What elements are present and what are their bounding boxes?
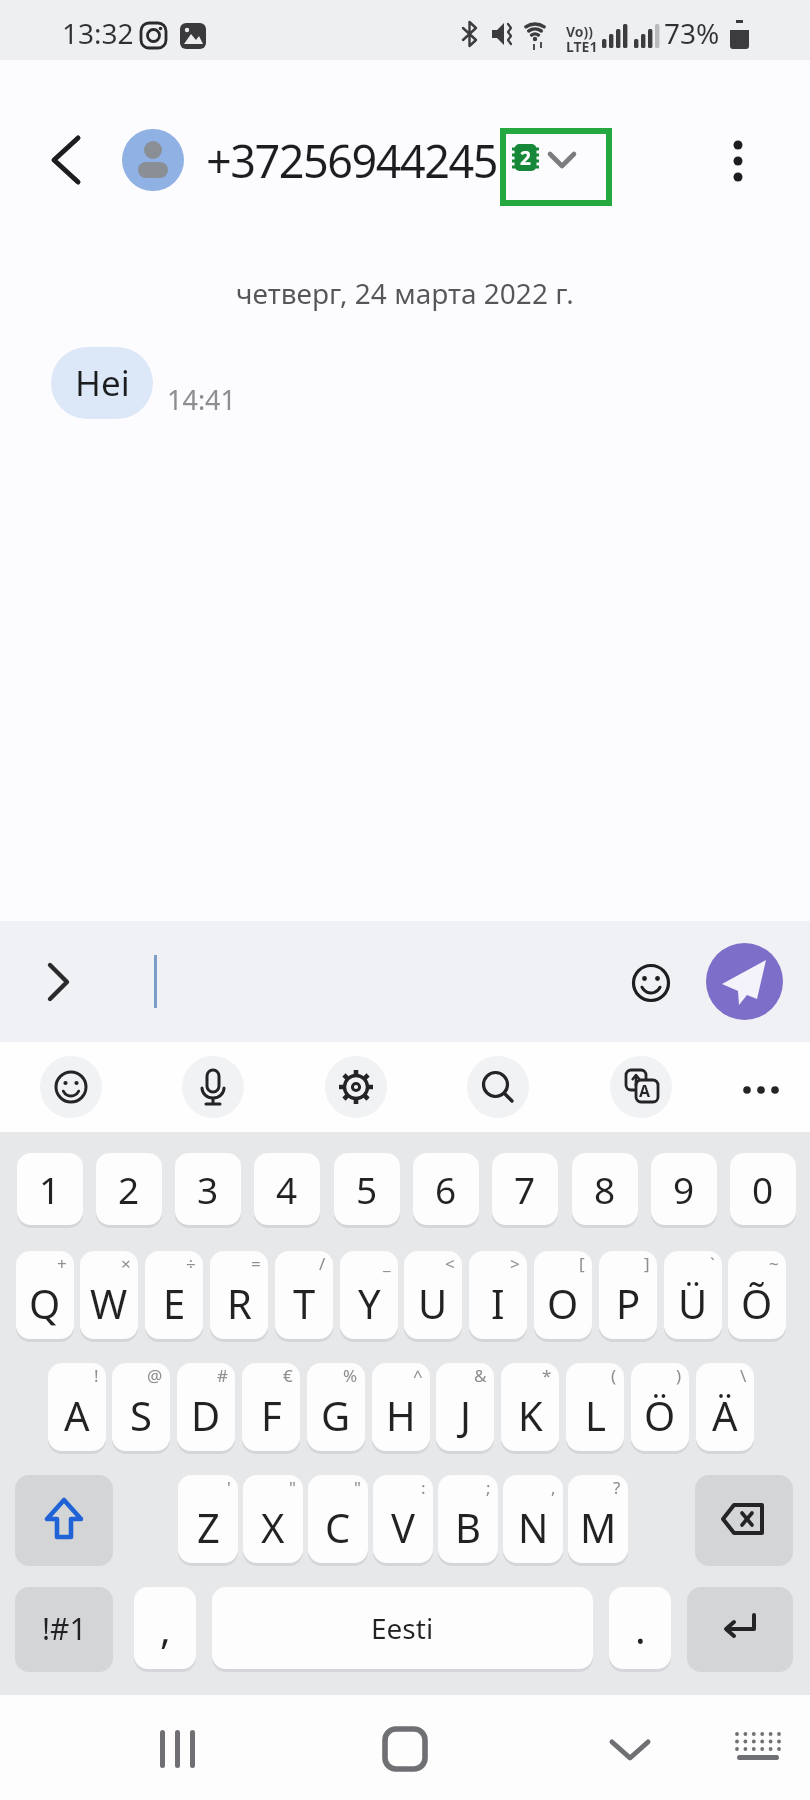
- staticText: G: [321, 1388, 351, 1442]
- button[interactable]: B: [438, 1475, 498, 1563]
- button[interactable]: 2: [96, 1153, 162, 1225]
- staticText: :: [421, 1476, 426, 1499]
- button[interactable]: G: [307, 1363, 365, 1451]
- button[interactable]: N: [503, 1475, 563, 1563]
- button[interactable]: [36, 958, 80, 1008]
- staticText: 2: [118, 1164, 140, 1214]
- button[interactable]: [182, 1056, 244, 1118]
- staticText: +37256944245: [206, 130, 497, 191]
- staticText: 2: [520, 145, 531, 171]
- button[interactable]: 7: [492, 1153, 558, 1225]
- staticText: ÷: [186, 1252, 196, 1275]
- button[interactable]: [40, 1056, 102, 1118]
- button[interactable]: 1: [17, 1153, 83, 1225]
- button[interactable]: S: [112, 1363, 170, 1451]
- staticText: @: [147, 1364, 163, 1387]
- button[interactable]: P: [599, 1251, 657, 1339]
- staticText: L: [585, 1388, 606, 1442]
- button[interactable]: Y: [340, 1251, 398, 1339]
- button[interactable]: V: [373, 1475, 433, 1563]
- button[interactable]: 3: [175, 1153, 241, 1225]
- button[interactable]: U: [404, 1251, 462, 1339]
- button[interactable]: Õ: [728, 1251, 786, 1339]
- button[interactable]: [122, 129, 184, 191]
- staticText: ): [676, 1364, 682, 1387]
- button[interactable]: T: [275, 1251, 333, 1339]
- button[interactable]: 5: [334, 1153, 400, 1225]
- staticText: C: [325, 1500, 351, 1554]
- button[interactable]: 9: [651, 1153, 717, 1225]
- button[interactable]: 6: [413, 1153, 479, 1225]
- button[interactable]: I: [469, 1251, 527, 1339]
- staticText: Ö: [644, 1388, 676, 1442]
- staticText: ,: [160, 1601, 171, 1655]
- button[interactable]: [629, 961, 673, 1005]
- button[interactable]: Eesti: [212, 1587, 593, 1669]
- button[interactable]: W: [80, 1251, 138, 1339]
- button[interactable]: F: [242, 1363, 300, 1451]
- button[interactable]: [375, 1719, 435, 1779]
- staticText: K: [518, 1388, 543, 1442]
- button[interactable]: 0: [730, 1153, 796, 1225]
- button[interactable]: Z: [178, 1475, 238, 1563]
- staticText: Õ: [741, 1276, 773, 1330]
- button[interactable]: [695, 1475, 793, 1563]
- button[interactable]: R: [210, 1251, 268, 1339]
- staticText: J: [460, 1388, 471, 1442]
- staticText: O: [547, 1276, 579, 1330]
- button[interactable]: [15, 1475, 113, 1563]
- button[interactable]: K: [501, 1363, 559, 1451]
- staticText: €: [283, 1364, 293, 1387]
- button[interactable]: Q: [16, 1251, 74, 1339]
- staticText: U: [418, 1276, 448, 1330]
- button[interactable]: D: [177, 1363, 235, 1451]
- button[interactable]: [706, 943, 783, 1020]
- button[interactable]: X: [243, 1475, 303, 1563]
- button[interactable]: A: [610, 1056, 672, 1118]
- button[interactable]: [734, 1060, 790, 1116]
- button[interactable]: ,: [134, 1587, 196, 1669]
- button[interactable]: [718, 132, 758, 188]
- staticText: Ü: [678, 1276, 708, 1330]
- button[interactable]: !#1: [15, 1587, 113, 1669]
- button[interactable]: [148, 1720, 208, 1778]
- button[interactable]: A: [48, 1363, 106, 1451]
- button[interactable]: Ü: [664, 1251, 722, 1339]
- staticText: 4: [276, 1164, 298, 1214]
- staticText: ~: [769, 1252, 779, 1275]
- button[interactable]: L: [566, 1363, 624, 1451]
- button[interactable]: [325, 1056, 387, 1118]
- button[interactable]: C: [308, 1475, 368, 1563]
- staticText: S: [130, 1388, 152, 1442]
- button[interactable]: Ä: [696, 1363, 754, 1451]
- button[interactable]: 2: [512, 144, 539, 171]
- staticText: /: [319, 1252, 326, 1275]
- button[interactable]: O: [534, 1251, 592, 1339]
- button[interactable]: H: [372, 1363, 430, 1451]
- staticText: (: [611, 1364, 617, 1387]
- staticText: P: [616, 1276, 641, 1330]
- staticText: ": [354, 1476, 361, 1499]
- staticText: W: [90, 1276, 128, 1330]
- button[interactable]: 4: [254, 1153, 320, 1225]
- staticText: 7: [514, 1164, 536, 1214]
- button[interactable]: [687, 1587, 793, 1669]
- staticText: 8: [594, 1164, 616, 1214]
- button[interactable]: .: [609, 1587, 671, 1669]
- button[interactable]: [42, 134, 90, 188]
- staticText: ^: [413, 1364, 423, 1387]
- button[interactable]: J: [436, 1363, 494, 1451]
- button[interactable]: [600, 1722, 660, 1776]
- staticText: `: [710, 1252, 715, 1275]
- staticText: 6: [435, 1164, 457, 1214]
- button[interactable]: M: [568, 1475, 628, 1563]
- button[interactable]: Ö: [631, 1363, 689, 1451]
- button[interactable]: [730, 1724, 786, 1774]
- button[interactable]: E: [145, 1251, 203, 1339]
- staticText: _: [383, 1252, 391, 1275]
- button[interactable]: Hei: [51, 347, 153, 419]
- staticText: <: [445, 1252, 455, 1275]
- button[interactable]: [467, 1056, 529, 1118]
- staticText: ,: [551, 1476, 556, 1499]
- button[interactable]: 8: [572, 1153, 638, 1225]
